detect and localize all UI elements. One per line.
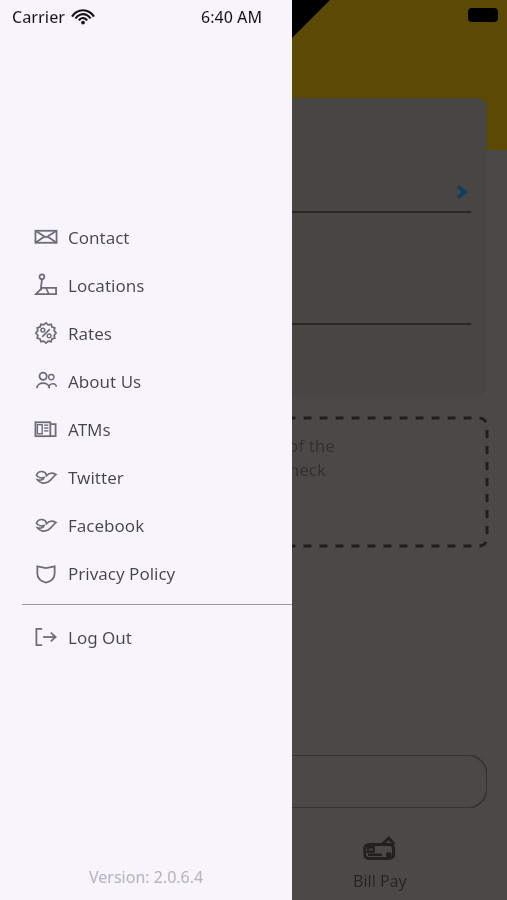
button[interactable]: Home Banking: [116, 640, 230, 662]
button[interactable]: ATMs: [0, 405, 292, 453]
staticText: Version: 2.0.6.4: [89, 866, 204, 888]
staticText: Contact: [68, 226, 130, 249]
staticText: Privacy Policy: [68, 562, 176, 585]
button[interactable]: History: [20, 755, 487, 808]
staticText: Locations: [68, 274, 145, 297]
button[interactable]: Select Account: [36, 172, 471, 212]
staticText: By submitting you agree to the: [20, 618, 253, 640]
button[interactable]: Locations: [0, 261, 292, 309]
staticText: Rates: [68, 322, 112, 345]
staticText: Log Out: [68, 626, 132, 649]
button[interactable]: Bill Pay: [253, 828, 507, 900]
staticText: 6:40 AM: [201, 6, 263, 28]
staticText: Twitter: [68, 466, 124, 489]
button[interactable]: Rates: [0, 309, 292, 357]
staticText: Facebook: [68, 514, 145, 537]
button[interactable]: Twitter: [0, 453, 292, 501]
staticText: "For Mobile Deposit Only": [20, 572, 215, 594]
staticText: About Us: [68, 370, 142, 393]
button[interactable]: Contact: [0, 213, 292, 261]
staticText: Carrier: [12, 6, 66, 28]
button[interactable]: Privacy Policy: [0, 549, 292, 597]
staticText: Bill Pay: [353, 870, 407, 892]
staticText: Take a picture of the BACK of the check: [173, 434, 335, 481]
button[interactable]: Log Out: [0, 613, 292, 661]
staticText: ATMs: [68, 418, 111, 441]
button[interactable]: Deposit: [0, 828, 253, 900]
staticText: Deposit: [98, 870, 156, 892]
staticText: terms in the: [20, 640, 116, 662]
button[interactable]: About Us: [0, 357, 292, 405]
button[interactable]: Facebook: [0, 501, 292, 549]
